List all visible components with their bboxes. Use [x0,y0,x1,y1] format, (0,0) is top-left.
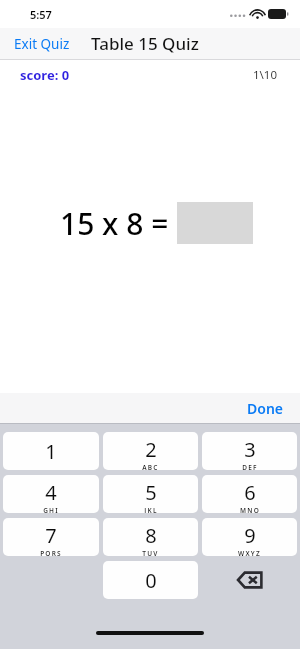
staticText: 4 [45,479,57,506]
button[interactable]: 6 [202,475,297,513]
staticText: Table 15 Quiz [91,32,199,55]
staticText: 9 [244,522,256,549]
staticText: JKL [144,506,158,513]
staticText: TUV [142,549,159,556]
staticText: 15 x 8 = [60,203,169,244]
staticText: 8 [145,522,157,549]
staticText: 1\10 [253,67,278,83]
button[interactable]: Done [231,395,300,422]
staticText: 3 [244,436,256,463]
button[interactable]: 7 [3,518,99,556]
staticText: PQRS [40,549,62,556]
button[interactable]: 9 [202,518,297,556]
button[interactable]: Backspace [202,561,297,599]
staticText: 6 [244,479,256,506]
button[interactable]: 2 [103,432,198,470]
button[interactable]: 3 [202,432,297,470]
button[interactable]: 8 [103,518,198,556]
staticText: 1 [45,438,57,465]
button[interactable]: Exit Quiz [0,31,78,57]
staticText: Exit Quiz [14,35,70,53]
button[interactable]: 1 [3,432,99,470]
staticText: ABC [142,463,159,470]
staticText: GHI [43,506,59,513]
staticText: Done [247,399,284,418]
staticText: 7 [45,522,57,549]
staticText: 0 [145,567,157,594]
staticText: 2 [145,436,157,463]
staticText: 5 [145,479,157,506]
staticText: score: 0 [20,66,70,84]
button[interactable]: 5 [103,475,198,513]
staticText: 5:57 [30,7,52,22]
staticText: WXYZ [238,549,261,556]
staticText: MNO [240,506,260,513]
staticText: DEF [242,463,258,470]
button[interactable]: 0 [103,561,198,599]
button[interactable]: 4 [3,475,99,513]
